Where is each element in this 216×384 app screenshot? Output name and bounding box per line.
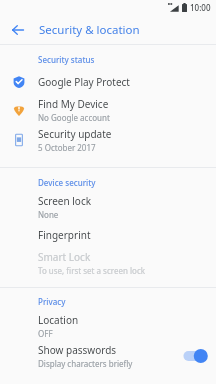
staticText: Security & location (39, 22, 140, 38)
staticText: No Google account (38, 112, 110, 123)
staticText: Google Play Protect (38, 75, 130, 89)
staticText: Fingerprint (38, 228, 91, 242)
staticText: Display characters briefly (38, 358, 133, 369)
staticText: Device security (38, 177, 96, 188)
staticText: To use, first set a screen lock (38, 265, 145, 276)
button[interactable]: Security update (0, 125, 216, 155)
staticText: Show passwords (38, 343, 117, 357)
button[interactable]: Screen lock (0, 192, 216, 222)
staticText: 5 October 2017 (38, 142, 96, 153)
button[interactable]: Show passwords (0, 341, 216, 371)
staticText: Smart Lock (38, 250, 91, 264)
staticText: Security update (38, 127, 112, 141)
button[interactable]: Smart Lock (0, 248, 216, 278)
staticText: 10:00 (190, 2, 211, 13)
staticText: Security status (38, 54, 95, 65)
staticText: Location (38, 313, 79, 327)
button[interactable]: Find My Device (0, 95, 216, 125)
button[interactable]: Fingerprint (0, 222, 216, 248)
button[interactable]: Location (0, 311, 216, 341)
staticText: Find My Device (38, 97, 109, 111)
staticText: Privacy (38, 296, 66, 307)
staticText: Screen lock (38, 194, 92, 208)
button[interactable]: Google Play Protect (0, 69, 216, 95)
staticText: None (38, 209, 59, 220)
button[interactable]: Navigate up (5, 17, 31, 43)
staticText: OFF (38, 328, 53, 339)
button[interactable]: Show passwords (182, 347, 208, 365)
